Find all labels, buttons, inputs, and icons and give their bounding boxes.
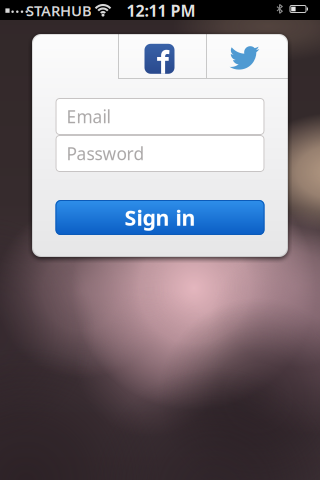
staticText: 12:11 PM [126,0,195,21]
staticText: Sign in [124,203,195,232]
button[interactable]: Password [55,135,264,172]
button[interactable]: Email [55,98,264,135]
staticText: Password [66,142,144,165]
staticText: STARHUB [26,1,92,20]
button[interactable]: Sign in with Twitter [207,34,288,78]
button[interactable]: Sign in [55,200,264,235]
button[interactable]: Sign in with Facebook [119,34,206,78]
staticText: Email [66,105,110,128]
